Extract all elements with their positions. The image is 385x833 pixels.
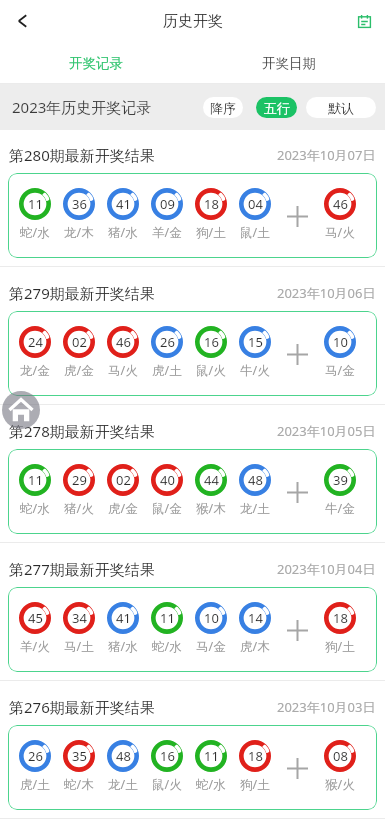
- staticText: 36: [72, 195, 87, 213]
- staticText: 鼠/火: [152, 776, 182, 793]
- staticText: 2023年10月06日: [277, 284, 376, 302]
- staticText: 马/金: [196, 638, 226, 655]
- button[interactable]: 开奖记录: [0, 42, 192, 84]
- staticText: 08: [333, 747, 348, 765]
- staticText: 蛇/水: [20, 500, 50, 517]
- button[interactable]: 降序: [203, 97, 243, 118]
- staticText: 48: [116, 747, 131, 765]
- staticText: 10: [333, 333, 348, 351]
- staticText: 02: [72, 333, 87, 351]
- staticText: 猪/水: [108, 224, 138, 241]
- staticText: 蛇/水: [20, 224, 50, 241]
- staticText: 48: [248, 471, 263, 489]
- staticText: 第280期最新开奖结果: [9, 145, 155, 165]
- staticText: 马/火: [325, 224, 355, 241]
- button[interactable]: 默认: [306, 97, 376, 118]
- button[interactable]: 开奖日期: [192, 42, 385, 84]
- staticText: 2023年历史开奖记录: [12, 97, 152, 117]
- staticText: 鼠/金: [152, 500, 182, 517]
- staticText: 猪/火: [64, 500, 94, 517]
- staticText: 11: [28, 195, 43, 213]
- staticText: 龙/土: [240, 500, 270, 517]
- staticText: 18: [248, 747, 263, 765]
- staticText: 14: [248, 609, 263, 627]
- staticText: 09: [160, 195, 175, 213]
- staticText: 04: [248, 195, 263, 213]
- staticText: 41: [116, 609, 131, 627]
- staticText: 蛇/水: [152, 638, 182, 655]
- staticText: 龙/木: [64, 224, 94, 241]
- staticText: 猴/火: [325, 776, 355, 793]
- staticText: 猪/水: [108, 638, 138, 655]
- staticText: 40: [160, 471, 175, 489]
- staticText: 虎/木: [240, 638, 270, 655]
- staticText: 蛇/木: [64, 776, 94, 793]
- staticText: 第278期最新开奖结果: [9, 421, 155, 441]
- button[interactable]: Home: [2, 391, 40, 429]
- staticText: 羊/火: [20, 638, 50, 655]
- staticText: 39: [333, 471, 348, 489]
- staticText: 开奖日期: [262, 55, 316, 72]
- staticText: 虎/土: [152, 362, 182, 379]
- staticText: 默认: [328, 100, 354, 116]
- staticText: 11: [28, 471, 43, 489]
- staticText: 29: [72, 471, 87, 489]
- staticText: 虎/金: [64, 362, 94, 379]
- button[interactable]: 24: [8, 311, 377, 396]
- staticText: 2023年10月03日: [277, 698, 376, 716]
- staticText: 降序: [210, 100, 236, 116]
- staticText: 45: [28, 609, 43, 627]
- staticText: 猴/木: [196, 500, 226, 517]
- staticText: 狗/土: [240, 776, 270, 793]
- staticText: 龙/金: [20, 362, 50, 379]
- staticText: 羊/金: [152, 224, 182, 241]
- staticText: 02: [116, 471, 131, 489]
- staticText: 狗/土: [325, 638, 355, 655]
- staticText: 马/火: [108, 362, 138, 379]
- staticText: 牛/火: [240, 362, 270, 379]
- button[interactable]: 11: [8, 173, 377, 258]
- button[interactable]: Back: [0, 0, 44, 42]
- button[interactable]: 五行: [256, 97, 297, 118]
- staticText: 第279期最新开奖结果: [9, 283, 155, 303]
- staticText: 五行: [264, 100, 290, 116]
- staticText: 18: [333, 609, 348, 627]
- staticText: 历史开奖: [163, 12, 223, 31]
- staticText: 10: [204, 609, 219, 627]
- button[interactable]: Records: [343, 0, 385, 42]
- staticText: 11: [160, 609, 175, 627]
- staticText: 开奖记录: [69, 55, 123, 72]
- staticText: 第276期最新开奖结果: [9, 697, 155, 717]
- staticText: 24: [28, 333, 43, 351]
- button[interactable]: 45: [8, 587, 377, 672]
- button[interactable]: 26: [8, 725, 377, 810]
- staticText: 46: [116, 333, 131, 351]
- staticText: 26: [28, 747, 43, 765]
- staticText: 鼠/火: [196, 362, 226, 379]
- staticText: 虎/土: [20, 776, 50, 793]
- staticText: 马/土: [64, 638, 94, 655]
- staticText: 16: [160, 747, 175, 765]
- staticText: 鼠/土: [240, 224, 270, 241]
- staticText: 虎/金: [108, 500, 138, 517]
- staticText: 18: [204, 195, 219, 213]
- staticText: 34: [72, 609, 87, 627]
- staticText: 龙/土: [108, 776, 138, 793]
- staticText: 16: [204, 333, 219, 351]
- staticText: 41: [116, 195, 131, 213]
- staticText: 2023年10月04日: [277, 560, 376, 578]
- staticText: 2023年10月05日: [277, 422, 376, 440]
- staticText: 狗/土: [196, 224, 226, 241]
- staticText: 马/金: [325, 362, 355, 379]
- staticText: 26: [160, 333, 175, 351]
- staticText: 2023年10月07日: [277, 146, 376, 164]
- staticText: 46: [333, 195, 348, 213]
- staticText: 44: [204, 471, 219, 489]
- staticText: 牛/金: [325, 500, 355, 517]
- staticText: 第277期最新开奖结果: [9, 559, 155, 579]
- staticText: 35: [72, 747, 87, 765]
- staticText: 15: [248, 333, 263, 351]
- staticText: 蛇/水: [196, 776, 226, 793]
- button[interactable]: 11: [8, 449, 377, 534]
- staticText: 11: [204, 747, 219, 765]
